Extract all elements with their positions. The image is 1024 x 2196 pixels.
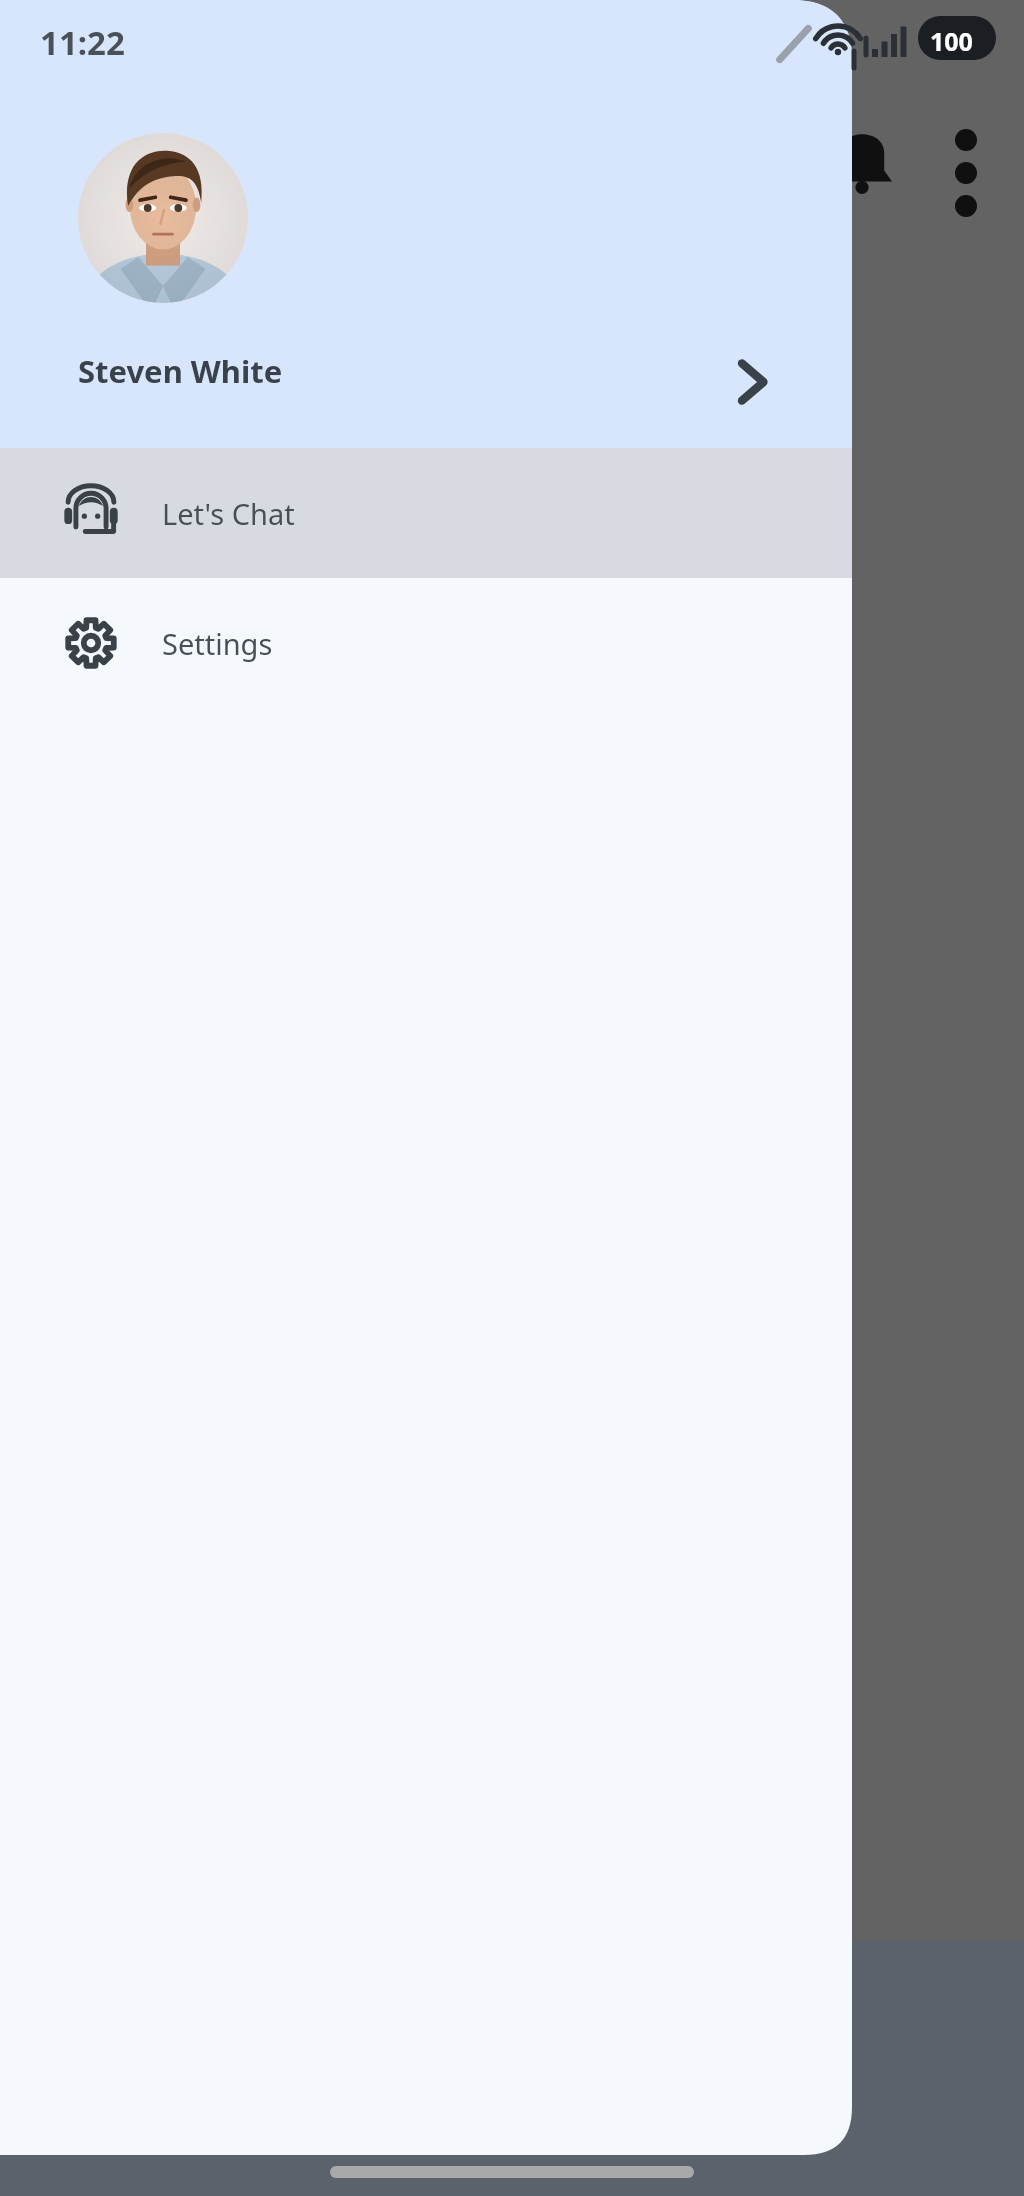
button[interactable]: Let's Chat xyxy=(0,448,852,578)
staticText: Settings xyxy=(162,624,273,663)
other: Let's Chat xyxy=(62,484,120,542)
staticText: Steven White xyxy=(78,350,283,392)
button[interactable]: Open profile xyxy=(716,346,788,418)
staticText: 11:22 xyxy=(40,20,125,65)
other: Settings xyxy=(62,614,120,672)
button[interactable]: Steven White xyxy=(0,0,852,448)
staticText: 100 xyxy=(930,24,973,58)
staticText: Let's Chat xyxy=(162,494,295,533)
button[interactable]: Settings xyxy=(0,578,852,708)
